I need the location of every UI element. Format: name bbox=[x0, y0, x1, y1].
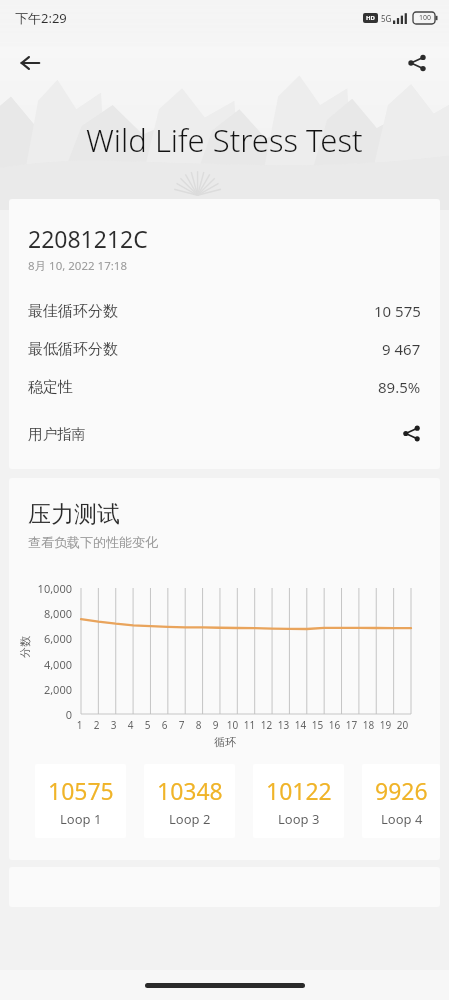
staticText: Loop 4 bbox=[381, 810, 423, 828]
staticText: 1 bbox=[71, 718, 88, 732]
staticText: Wild Life Stress Test bbox=[86, 119, 363, 161]
staticText: 16 bbox=[326, 718, 343, 732]
staticText: 14 bbox=[292, 718, 309, 732]
button[interactable]: 10122 bbox=[253, 764, 344, 838]
staticText: 100 bbox=[419, 13, 432, 23]
staticText: 压力测试 bbox=[28, 500, 120, 529]
staticText: 13 bbox=[275, 718, 292, 732]
staticText: 最佳循环分数 bbox=[28, 302, 118, 321]
staticText: 9 467 bbox=[382, 339, 421, 359]
staticText: 8月 10, 2022 17:18 bbox=[28, 258, 127, 274]
staticText: 10 bbox=[224, 718, 241, 732]
staticText: Loop 3 bbox=[278, 810, 320, 828]
staticText: 稳定性 bbox=[28, 378, 73, 397]
staticText: 5G bbox=[381, 13, 392, 24]
staticText: Loop 2 bbox=[169, 810, 211, 828]
staticText: 8 bbox=[190, 718, 207, 732]
staticText: 查看负载下的性能变化 bbox=[28, 534, 158, 550]
button[interactable]: Back bbox=[10, 43, 50, 83]
staticText: 2 bbox=[88, 718, 105, 732]
staticText: 用户指南 bbox=[28, 425, 86, 443]
staticText: 循环 bbox=[214, 735, 236, 749]
staticText: 10,000 bbox=[9, 581, 72, 596]
button[interactable]: 10348 bbox=[144, 764, 235, 838]
staticText: 10348 bbox=[157, 775, 223, 806]
button[interactable]: 最低循环分数 bbox=[28, 330, 421, 368]
staticText: 9926 bbox=[375, 775, 428, 806]
button[interactable]: 稳定性 bbox=[28, 368, 421, 406]
staticText: 6 bbox=[156, 718, 173, 732]
staticText: Loop 1 bbox=[60, 810, 102, 828]
staticText: 分数 bbox=[18, 636, 32, 658]
button[interactable]: Share bbox=[397, 43, 437, 83]
staticText: 最低循环分数 bbox=[28, 340, 118, 359]
staticText: 9 bbox=[207, 718, 224, 732]
staticText: 0 bbox=[9, 707, 72, 722]
staticText: 10575 bbox=[48, 775, 114, 806]
staticText: 2,000 bbox=[9, 682, 72, 697]
staticText: 7 bbox=[173, 718, 190, 732]
staticText: HD bbox=[366, 14, 375, 22]
staticText: 12 bbox=[258, 718, 275, 732]
staticText: 3 bbox=[105, 718, 122, 732]
button[interactable]: 用户指南 bbox=[28, 418, 421, 449]
button[interactable]: 10575 bbox=[35, 764, 126, 838]
button[interactable]: 9926 bbox=[362, 764, 440, 838]
staticText: 15 bbox=[309, 718, 326, 732]
staticText: 4,000 bbox=[9, 657, 72, 672]
staticText: 22081212C bbox=[28, 223, 148, 254]
staticText: 89.5% bbox=[378, 377, 421, 397]
staticText: 19 bbox=[377, 718, 394, 732]
button[interactable]: 最佳循环分数 bbox=[28, 292, 421, 330]
staticText: 18 bbox=[360, 718, 377, 732]
staticText: 下午2:29 bbox=[15, 9, 67, 27]
staticText: 10 575 bbox=[374, 301, 421, 321]
staticText: 5 bbox=[139, 718, 156, 732]
staticText: 17 bbox=[343, 718, 360, 732]
staticText: 10122 bbox=[266, 775, 332, 806]
staticText: 6,000 bbox=[9, 631, 72, 646]
staticText: 8,000 bbox=[9, 606, 72, 621]
staticText: 4 bbox=[122, 718, 139, 732]
staticText: 20 bbox=[394, 718, 411, 732]
staticText: 11 bbox=[241, 718, 258, 732]
